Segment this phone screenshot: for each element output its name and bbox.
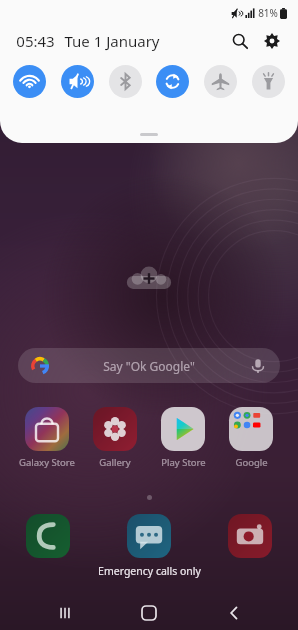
button[interactable]: Say "Ok Google": [18, 348, 280, 383]
staticText: 81%: [258, 6, 278, 20]
staticText: Tue 1 January: [64, 31, 160, 51]
staticText: Galaxy Store: [19, 456, 75, 469]
button[interactable]: Mute: [61, 65, 94, 98]
staticText: Google: [235, 456, 268, 469]
button[interactable]: Gallery: [84, 407, 146, 469]
button[interactable]: Flashlight: [252, 65, 285, 98]
button[interactable]: Bluetooth: [109, 65, 142, 98]
button[interactable]: Messages: [127, 514, 171, 558]
staticText: 05:43: [16, 31, 55, 51]
button[interactable]: Settings: [260, 29, 284, 53]
button[interactable]: Home: [129, 596, 169, 630]
button[interactable]: Auto rotate: [156, 65, 189, 98]
button[interactable]: Camera: [228, 514, 272, 558]
button[interactable]: Phone: [26, 514, 70, 558]
staticText: Emergency calls only: [98, 564, 201, 578]
button[interactable]: Back: [214, 596, 254, 630]
staticText: Gallery: [99, 456, 131, 469]
staticText: Play Store: [161, 456, 206, 469]
button[interactable]: Wi-Fi: [13, 65, 46, 98]
button[interactable]: Google: [220, 407, 282, 469]
staticText: Say "Ok Google": [103, 358, 195, 374]
button[interactable]: Flight mode: [204, 65, 237, 98]
button[interactable]: Search: [228, 29, 252, 53]
button[interactable]: Recents: [45, 596, 85, 630]
button[interactable]: Galaxy Store: [16, 407, 78, 469]
button[interactable]: Add widget: [126, 262, 172, 290]
button[interactable]: Play Store: [152, 407, 214, 469]
